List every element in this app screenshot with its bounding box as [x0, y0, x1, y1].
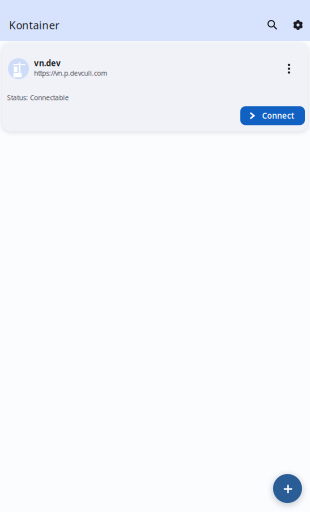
staticText: https://vn.p.devculi.com	[34, 69, 107, 78]
button[interactable]: Add environment	[273, 474, 302, 503]
button[interactable]: More options	[281, 58, 297, 79]
staticText: vn.dev	[34, 58, 61, 68]
staticText: Kontainer	[9, 18, 59, 32]
button[interactable]: Search	[259, 9, 286, 41]
button[interactable]: Connect	[240, 106, 305, 125]
staticText: Connect	[262, 110, 294, 121]
staticText: Status: Connectable	[7, 93, 69, 102]
button[interactable]: Settings	[286, 9, 310, 41]
